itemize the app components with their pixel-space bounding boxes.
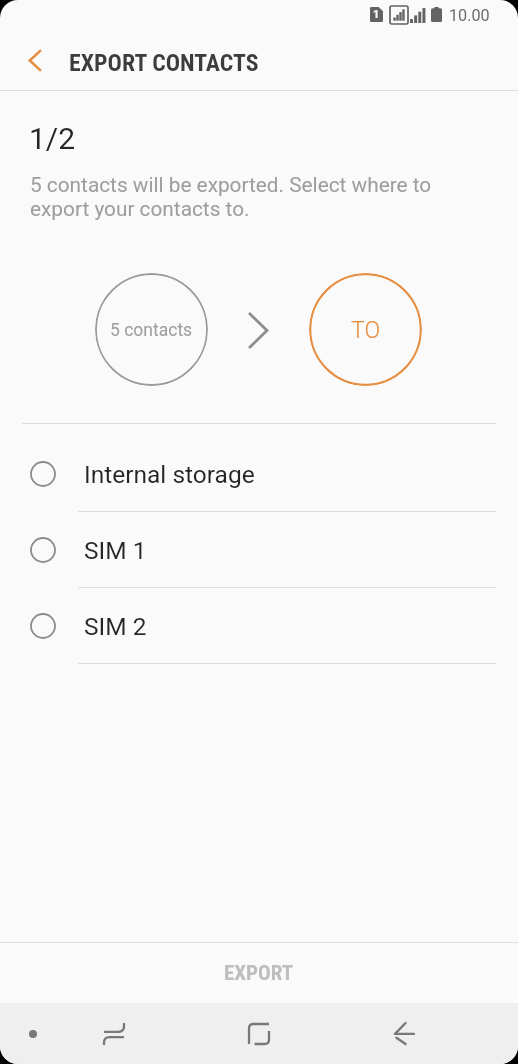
staticText: 5 contacts will be exported. Select wher… bbox=[30, 173, 432, 221]
staticText: Internal storage bbox=[84, 460, 255, 489]
staticText: EXPORT bbox=[224, 961, 294, 986]
staticText: 1 bbox=[373, 8, 380, 21]
button[interactable]: Navigate up bbox=[0, 30, 69, 91]
staticText: SIM 2 bbox=[84, 612, 147, 641]
button[interactable]: Back bbox=[364, 1003, 444, 1064]
button[interactable]: Menu bbox=[0, 1003, 66, 1064]
button[interactable]: Home bbox=[219, 1003, 299, 1064]
button[interactable]: SIM 2 bbox=[0, 588, 518, 664]
button[interactable]: 5 contacts bbox=[95, 273, 208, 386]
button[interactable]: SIM 1 bbox=[0, 512, 518, 588]
button[interactable]: TO bbox=[309, 273, 422, 386]
staticText: 1/2 bbox=[29, 121, 76, 156]
button[interactable]: Internal storage bbox=[0, 436, 518, 512]
staticText: TO bbox=[351, 317, 380, 344]
button[interactable]: EXPORT bbox=[0, 943, 518, 1003]
button[interactable]: Recent apps bbox=[74, 1003, 154, 1064]
staticText: EXPORT CONTACTS bbox=[69, 49, 259, 77]
staticText: 10.00 bbox=[449, 6, 490, 25]
staticText: SIM 1 bbox=[84, 536, 147, 565]
staticText: 5 contacts bbox=[110, 320, 193, 341]
